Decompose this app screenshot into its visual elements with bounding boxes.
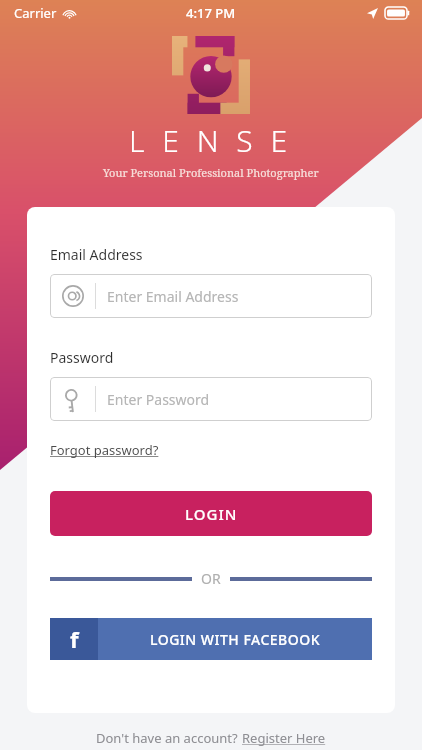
staticText: Enter Email Address <box>107 287 239 306</box>
button[interactable]: f <box>50 618 372 660</box>
button[interactable]: LOGIN <box>50 491 372 536</box>
other: Email <box>62 285 84 307</box>
staticText: Enter Password <box>107 390 210 409</box>
staticText: Carrier <box>14 4 57 22</box>
staticText: Register Here <box>242 729 326 747</box>
staticText: 4:17 PM <box>186 4 236 22</box>
button[interactable]: Password <box>50 377 372 421</box>
staticText: f <box>70 624 79 654</box>
button[interactable]: Forgot password? <box>50 441 159 459</box>
staticText: LOGIN WITH FACEBOOK <box>150 630 321 649</box>
button[interactable]: Email <box>50 274 372 318</box>
staticText: Don't have an account? <box>96 729 242 747</box>
staticText: OR <box>201 569 221 588</box>
staticText: Forgot password? <box>50 441 159 459</box>
button[interactable]: Don't have an account? <box>96 729 326 747</box>
staticText: Your Personal Professional Photographer <box>103 165 319 180</box>
other: Password <box>62 388 84 410</box>
staticText: Password <box>50 348 114 367</box>
staticText: L E N S E <box>129 120 293 161</box>
staticText: LOGIN <box>185 504 238 524</box>
staticText: Email Address <box>50 245 143 264</box>
